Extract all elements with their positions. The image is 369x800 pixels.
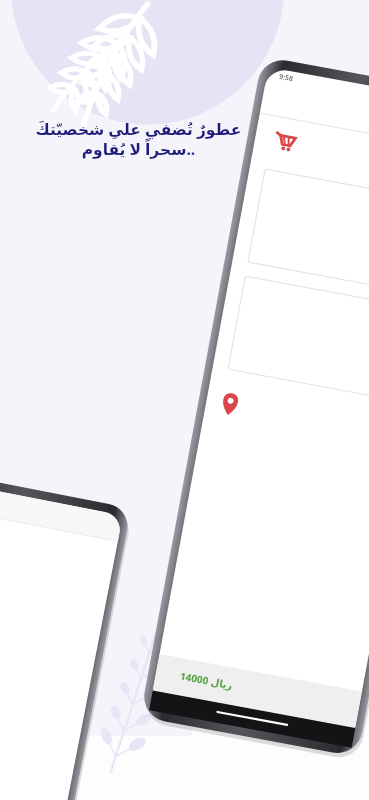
button[interactable]: Perfume app promotional banner	[0, 0, 369, 800]
